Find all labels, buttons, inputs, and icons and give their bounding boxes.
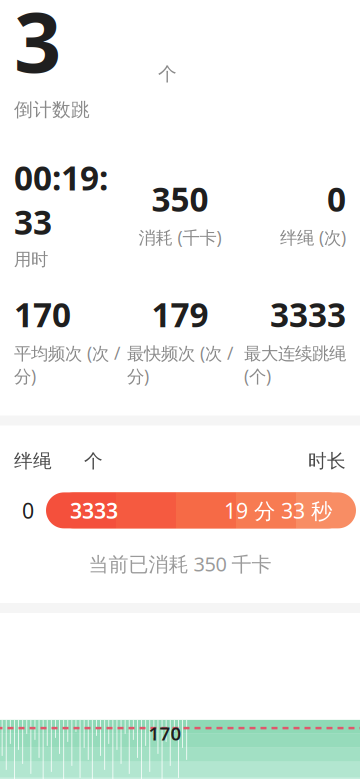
staticText: 00:19:33 [14, 155, 108, 244]
staticText: 当前已消耗 350 千卡 [88, 550, 271, 577]
staticText: 平均频次 (次 / 分) [14, 341, 120, 387]
staticText: 170 [14, 292, 71, 336]
staticText: 3333 [270, 292, 346, 336]
staticText: 19 分 33 秒 [224, 496, 332, 524]
staticText: 0 [22, 496, 34, 524]
staticText: 170 [148, 721, 181, 746]
staticText: 绊绳 (次) [280, 226, 346, 249]
staticText: 绊绳 [14, 449, 52, 472]
staticText: 最大连续跳绳 (个) [244, 341, 346, 387]
staticText: 3333 [14, 0, 155, 95]
staticText: 消耗 (千卡) [138, 226, 221, 249]
staticText: 179 [151, 292, 208, 336]
staticText: 用时 [14, 249, 48, 270]
staticText: 时长 [308, 449, 346, 472]
staticText: 0 [327, 177, 346, 221]
staticText: 个 [84, 449, 103, 472]
staticText: 350 [151, 177, 208, 221]
staticText: 倒计数跳 [14, 98, 90, 121]
staticText: 3333 [70, 496, 118, 524]
staticText: 最快频次 (次 / 分) [127, 341, 233, 387]
staticText: 个 [158, 62, 177, 85]
